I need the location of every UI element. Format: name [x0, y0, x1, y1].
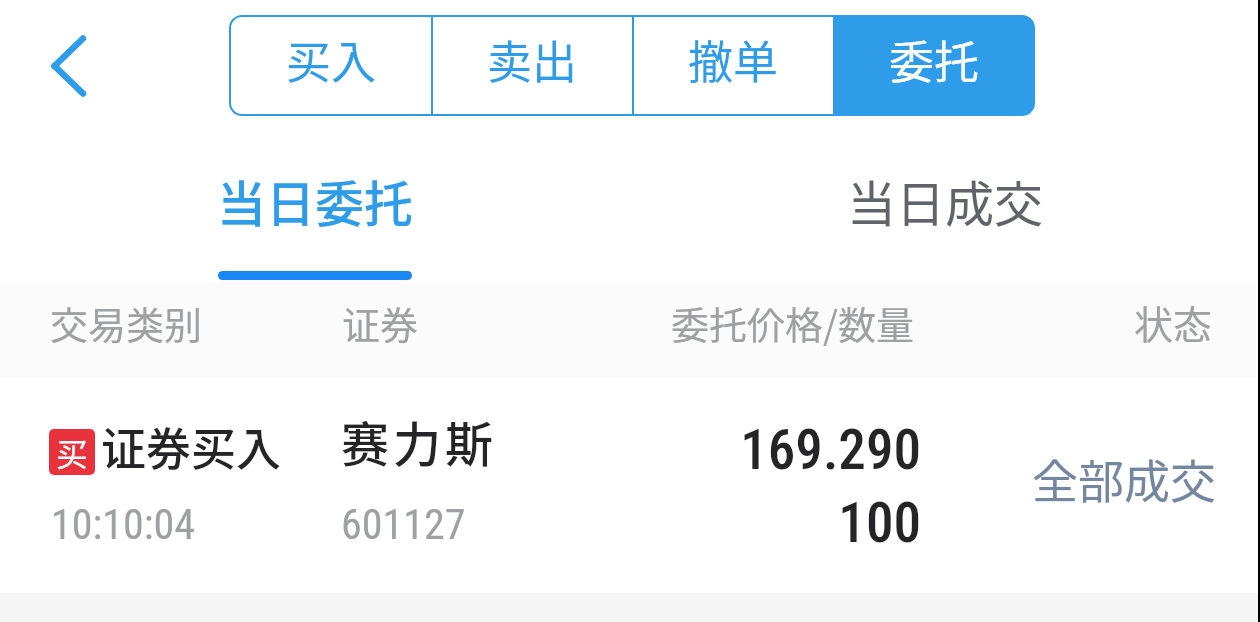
button[interactable]: 买入 [231, 17, 431, 114]
staticText: 交易类别 [50, 295, 203, 350]
staticText: 全部成交 [1032, 445, 1216, 512]
button[interactable]: 卖出 [433, 17, 632, 114]
button[interactable]: Back [16, 14, 96, 118]
staticText: 买 [56, 429, 89, 475]
staticText: 169.290 [619, 418, 921, 482]
button[interactable]: 委托 [835, 17, 1033, 114]
button[interactable]: 当日委托 [0, 145, 630, 285]
button[interactable]: 买 [0, 378, 1260, 593]
staticText: 10:10:04 [51, 500, 196, 549]
staticText: 撤单 [688, 27, 779, 92]
staticText: 100 [619, 491, 921, 555]
button[interactable]: 撤单 [634, 17, 833, 114]
staticText: 当日成交 [847, 165, 1044, 236]
staticText: 买入 [286, 27, 377, 92]
staticText: 证券 [342, 295, 419, 350]
staticText: 委托 [889, 27, 980, 92]
staticText: 卖出 [487, 27, 578, 92]
staticText: 委托价格/数量 [671, 295, 914, 350]
staticText: 601127 [341, 500, 466, 549]
staticText: 赛力斯 [341, 406, 498, 476]
staticText: 证券买入 [101, 414, 282, 479]
staticText: 当日委托 [217, 165, 414, 236]
button[interactable]: 当日成交 [630, 145, 1260, 285]
staticText: 状态 [1134, 294, 1213, 350]
